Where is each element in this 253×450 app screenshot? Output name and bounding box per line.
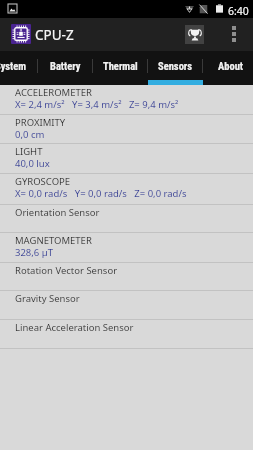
button[interactable]: More options	[220, 20, 248, 48]
button[interactable]: Benchmark	[180, 20, 208, 48]
button[interactable]: Battery	[38, 51, 93, 80]
button[interactable]: Thermal	[93, 51, 148, 80]
button[interactable]: GYROSCOPE	[0, 174, 253, 204]
staticText: Thermal	[103, 60, 138, 72]
button[interactable]: System	[0, 51, 38, 80]
button[interactable]: Linear Acceleration Sensor	[0, 320, 253, 348]
staticText: Orientation Sensor	[15, 206, 100, 219]
staticText: X= 2,4 m/s² Y= 3,4 m/s² Z= 9,4 m/s²	[15, 98, 179, 111]
button[interactable]: About	[203, 51, 253, 80]
staticText: 0,0 cm	[15, 128, 45, 141]
staticText: PROXIMITY	[15, 116, 66, 129]
staticText: Gravity Sensor	[15, 292, 80, 305]
button[interactable]: MAGNETOMETER	[0, 233, 253, 262]
button[interactable]: Orientation Sensor	[0, 205, 253, 232]
staticText: Battery	[50, 60, 81, 72]
staticText: LIGHT	[15, 145, 43, 158]
staticText: 6:40	[228, 4, 249, 18]
button[interactable]: Gravity Sensor	[0, 291, 253, 319]
staticText: Sensors	[158, 60, 193, 72]
staticText: CPU-Z	[35, 26, 74, 44]
staticText: 40,0 lux	[15, 157, 50, 170]
staticText: Linear Acceleration Sensor	[15, 321, 134, 334]
button[interactable]: Sensors	[148, 51, 203, 80]
staticText: GYROSCOPE	[15, 175, 71, 188]
staticText: ACCELEROMETER	[15, 86, 92, 99]
staticText: System	[0, 60, 27, 72]
button[interactable]: ACCELEROMETER	[0, 85, 253, 114]
staticText: Rotation Vector Sensor	[15, 264, 118, 277]
staticText: 328,6 µT	[15, 246, 53, 259]
staticText: About	[218, 60, 244, 72]
staticText: X= 0,0 rad/s Y= 0,0 rad/s Z= 0,0 rad/s	[15, 187, 187, 200]
button[interactable]: LIGHT	[0, 144, 253, 173]
button[interactable]: PROXIMITY	[0, 115, 253, 143]
staticText: MAGNETOMETER	[15, 234, 92, 247]
button[interactable]: Rotation Vector Sensor	[0, 263, 253, 290]
